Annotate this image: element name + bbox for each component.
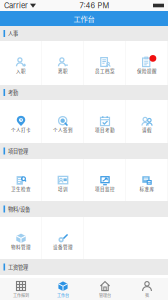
staticText: 人事 — [8, 30, 18, 37]
staticText: 项目监控 — [95, 185, 115, 192]
staticText: 保险提醒 — [137, 67, 157, 74]
button[interactable]: 请假 — [126, 100, 168, 143]
button[interactable]: 员工档案 — [84, 41, 126, 85]
staticText: 离职 — [58, 67, 68, 74]
button[interactable]: 培训 — [42, 159, 84, 201]
button[interactable]: 离职 — [42, 41, 84, 85]
button[interactable]: 我 — [126, 278, 168, 300]
staticText: 员工档案 — [95, 67, 115, 74]
staticText: 请假 — [142, 126, 152, 133]
staticText: 项目管理 — [8, 147, 28, 155]
staticText: 个人打卡 — [11, 126, 31, 133]
button[interactable]: 管理台 — [84, 278, 126, 300]
staticText: 物料管理 — [11, 243, 31, 250]
staticText: 入职 — [16, 67, 26, 74]
button[interactable]: 保险提醒 — [126, 41, 168, 85]
staticText: 工作台 — [73, 13, 94, 24]
button[interactable]: 标准库 — [126, 159, 168, 201]
button[interactable]: 项目考勤 — [84, 100, 126, 143]
staticText: 工作台 — [57, 292, 69, 298]
staticText: 工作报到 — [13, 292, 29, 298]
staticText: 我 — [145, 292, 149, 298]
button[interactable]: 卫生检查 — [0, 159, 42, 201]
button[interactable]: 设备管理 — [42, 217, 84, 259]
staticText: 培训 — [58, 185, 68, 192]
staticText: 个人签到 — [53, 126, 73, 133]
button[interactable]: 工作报到 — [0, 278, 42, 300]
button[interactable]: 入职 — [0, 41, 42, 85]
staticText: 工资管理 — [8, 263, 28, 271]
button[interactable]: 物料管理 — [0, 217, 42, 259]
button[interactable]: 工作台 — [42, 278, 84, 300]
staticText: 标准库 — [139, 185, 154, 192]
staticText: Carrier — [4, 1, 28, 10]
staticText: 物料/设备 — [8, 205, 30, 213]
staticText: 考勤 — [8, 89, 18, 96]
staticText: 项目考勤 — [95, 126, 115, 133]
staticText: 管理台 — [99, 292, 111, 298]
button[interactable]: 个人打卡 — [0, 100, 42, 143]
staticText: 7:46 PM — [79, 1, 109, 10]
button[interactable]: 项目监控 — [84, 159, 126, 201]
button[interactable]: 个人签到 — [42, 100, 84, 143]
staticText: 卫生检查 — [11, 185, 31, 192]
staticText: 设备管理 — [53, 243, 73, 250]
